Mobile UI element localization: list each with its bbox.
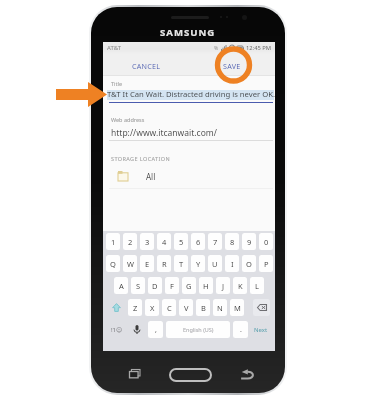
staticText: V: [184, 303, 189, 313]
staticText: L: [255, 281, 259, 291]
staticText: 9: [247, 237, 252, 247]
button[interactable]: K: [233, 277, 247, 294]
button[interactable]: A: [114, 277, 128, 294]
button[interactable]: 2: [123, 233, 137, 250]
button[interactable]: 8: [225, 233, 239, 250]
staticText: 1: [111, 237, 116, 247]
button[interactable]: Shift: [108, 299, 125, 316]
button[interactable]: Voice input: [128, 321, 145, 338]
staticText: CANCEL: [132, 61, 161, 71]
staticText: G: [186, 281, 192, 291]
staticText: S: [136, 281, 141, 291]
staticText: Web address: [111, 116, 145, 123]
button[interactable]: F: [165, 277, 179, 294]
button[interactable]: B: [196, 299, 210, 316]
staticText: A: [119, 281, 124, 291]
button[interactable]: O: [242, 255, 256, 272]
staticText: 3: [145, 237, 150, 247]
staticText: AT&T: [107, 44, 121, 52]
staticText: T&T It Can Wait. Distracted driving is n…: [107, 89, 275, 99]
staticText: T: [179, 259, 184, 269]
button[interactable]: Y: [191, 255, 205, 272]
button[interactable]: E: [140, 255, 154, 272]
staticText: %: [214, 45, 219, 52]
staticText: Z: [133, 303, 138, 313]
button[interactable]: 1: [106, 233, 120, 250]
button[interactable]: Q: [106, 255, 120, 272]
button[interactable]: N: [213, 299, 227, 316]
button[interactable]: SAVE: [189, 54, 275, 75]
staticText: D: [152, 281, 158, 291]
button[interactable]: U: [208, 255, 222, 272]
button[interactable]: R: [157, 255, 171, 272]
button[interactable]: 3: [140, 233, 154, 250]
button[interactable]: 5: [174, 233, 188, 250]
staticText: C: [167, 303, 172, 313]
button[interactable]: 7: [208, 233, 222, 250]
button[interactable]: .: [233, 321, 248, 338]
button[interactable]: 0: [259, 233, 273, 250]
button[interactable]: English (US): [166, 321, 230, 338]
button[interactable]: P: [259, 255, 273, 272]
button[interactable]: Z: [128, 299, 142, 316]
staticText: X: [150, 303, 155, 313]
button[interactable]: Recent apps: [127, 366, 142, 380]
button[interactable]: W: [123, 255, 137, 272]
button[interactable]: CANCEL: [103, 54, 189, 75]
staticText: 6: [196, 237, 201, 247]
staticText: R: [162, 259, 167, 269]
button[interactable]: 9: [242, 233, 256, 250]
button[interactable]: Delete: [253, 299, 270, 316]
button[interactable]: M: [230, 299, 244, 316]
staticText: Next: [254, 326, 268, 334]
button[interactable]: Next: [251, 321, 270, 338]
button[interactable]: X: [145, 299, 159, 316]
button[interactable]: 6: [191, 233, 205, 250]
button[interactable]: ,: [148, 321, 163, 338]
button[interactable]: I: [225, 255, 239, 272]
staticText: K: [238, 281, 243, 291]
button[interactable]: T: [174, 255, 188, 272]
button[interactable]: J: [216, 277, 230, 294]
staticText: 7: [213, 237, 218, 247]
staticText: Title: [111, 80, 122, 87]
button[interactable]: Home: [169, 368, 212, 382]
button[interactable]: H: [199, 277, 213, 294]
staticText: !1☺: [111, 326, 123, 334]
staticText: STORAGE LOCATION: [111, 155, 171, 162]
staticText: W: [127, 259, 134, 269]
staticText: SAMSUNG: [160, 26, 216, 39]
staticText: English (US): [183, 326, 214, 333]
staticText: .: [240, 325, 242, 335]
staticText: J: [222, 281, 225, 291]
button[interactable]: Symbols: [108, 321, 125, 338]
button[interactable]: Back: [238, 367, 256, 381]
button[interactable]: All: [103, 166, 275, 186]
staticText: ,: [155, 325, 157, 335]
button[interactable]: G: [182, 277, 196, 294]
staticText: P: [264, 259, 269, 269]
button[interactable]: L: [250, 277, 264, 294]
staticText: I: [231, 259, 234, 269]
staticText: Q: [110, 259, 116, 269]
staticText: 0: [264, 237, 269, 247]
staticText: F: [170, 281, 174, 291]
staticText: 4: [162, 237, 167, 247]
button[interactable]: V: [179, 299, 193, 316]
staticText: O: [246, 259, 252, 269]
staticText: SAVE: [223, 61, 241, 71]
button[interactable]: 4: [157, 233, 171, 250]
staticText: U: [212, 259, 218, 269]
button[interactable]: S: [131, 277, 145, 294]
staticText: N: [217, 303, 223, 313]
staticText: 8: [230, 237, 235, 247]
staticText: 5: [179, 237, 184, 247]
staticText: Y: [196, 259, 201, 269]
staticText: All: [146, 171, 156, 182]
staticText: http://www.itcanwait.com/: [111, 127, 217, 139]
staticText: M: [234, 303, 241, 313]
staticText: E: [145, 259, 150, 269]
button[interactable]: C: [162, 299, 176, 316]
button[interactable]: D: [148, 277, 162, 294]
staticText: 2: [128, 237, 133, 247]
